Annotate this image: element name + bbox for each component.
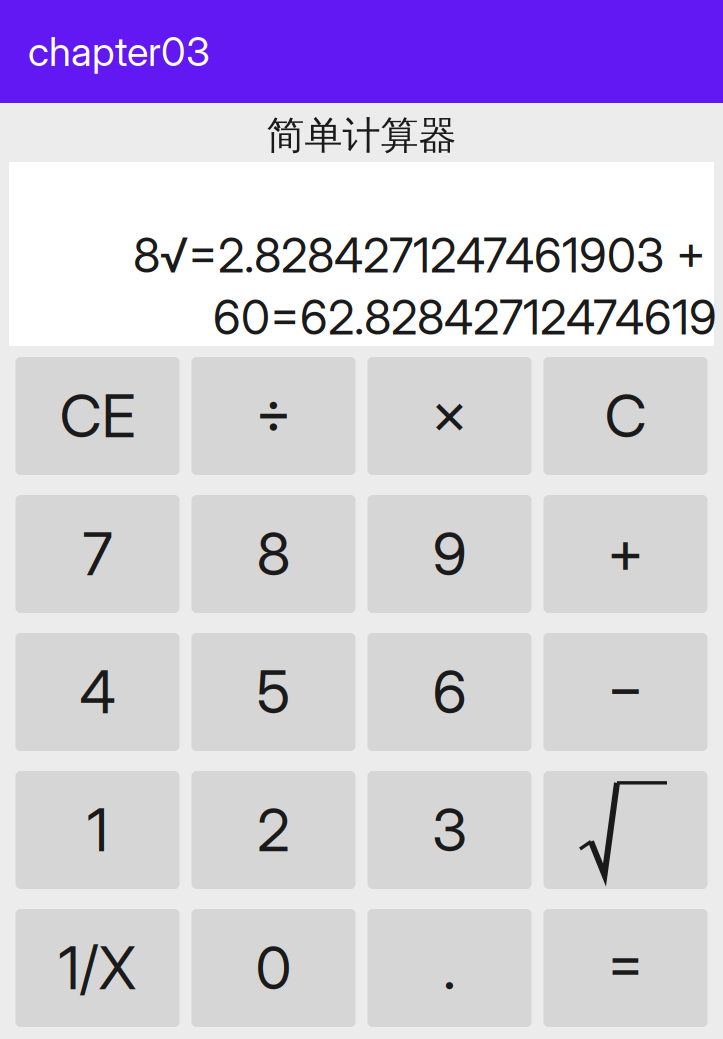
button[interactable]: × bbox=[367, 357, 531, 475]
staticText: 7 bbox=[82, 518, 112, 589]
button[interactable]: 1 bbox=[15, 771, 179, 889]
staticText: 1 bbox=[87, 794, 108, 865]
staticText: CE bbox=[59, 380, 135, 451]
button[interactable]: − bbox=[543, 633, 707, 751]
staticText: C bbox=[604, 380, 646, 451]
button[interactable]: CE bbox=[15, 357, 179, 475]
button[interactable]: 5 bbox=[191, 633, 355, 751]
button[interactable]: C bbox=[543, 357, 707, 475]
staticText: 2 bbox=[257, 794, 290, 865]
staticText: 8√=2.8284271247461903 + bbox=[133, 227, 706, 284]
staticText: 5 bbox=[256, 656, 290, 727]
button[interactable]: Square root bbox=[543, 771, 707, 889]
staticText: chapter03 bbox=[28, 27, 210, 76]
button[interactable]: 9 bbox=[367, 495, 531, 613]
staticText: 6 bbox=[432, 656, 466, 727]
staticText: 60=62.82842712474619 bbox=[213, 289, 717, 346]
staticText: 简单计算器 bbox=[266, 112, 456, 159]
staticText: . bbox=[443, 932, 456, 1003]
staticText: − bbox=[607, 651, 644, 722]
button[interactable]: 8 bbox=[191, 495, 355, 613]
button[interactable]: 3 bbox=[367, 771, 531, 889]
button[interactable]: + bbox=[543, 495, 707, 613]
staticText: = bbox=[607, 926, 644, 997]
staticText: × bbox=[431, 377, 468, 448]
button[interactable]: 7 bbox=[15, 495, 179, 613]
staticText: 1/X bbox=[58, 932, 136, 1003]
button[interactable]: = bbox=[543, 909, 707, 1027]
staticText: + bbox=[607, 515, 644, 586]
staticText: 3 bbox=[432, 794, 467, 865]
staticText: ÷ bbox=[255, 376, 292, 447]
button[interactable]: 4 bbox=[15, 633, 179, 751]
button[interactable]: 2 bbox=[191, 771, 355, 889]
button[interactable]: . bbox=[367, 909, 531, 1027]
staticText: 9 bbox=[432, 518, 466, 589]
staticText: 4 bbox=[79, 656, 115, 727]
button[interactable]: 0 bbox=[191, 909, 355, 1027]
button[interactable]: ÷ bbox=[191, 357, 355, 475]
button[interactable]: 1/X bbox=[15, 909, 179, 1027]
staticText: 0 bbox=[255, 932, 291, 1003]
staticText: 8 bbox=[256, 518, 290, 589]
button[interactable]: 6 bbox=[367, 633, 531, 751]
